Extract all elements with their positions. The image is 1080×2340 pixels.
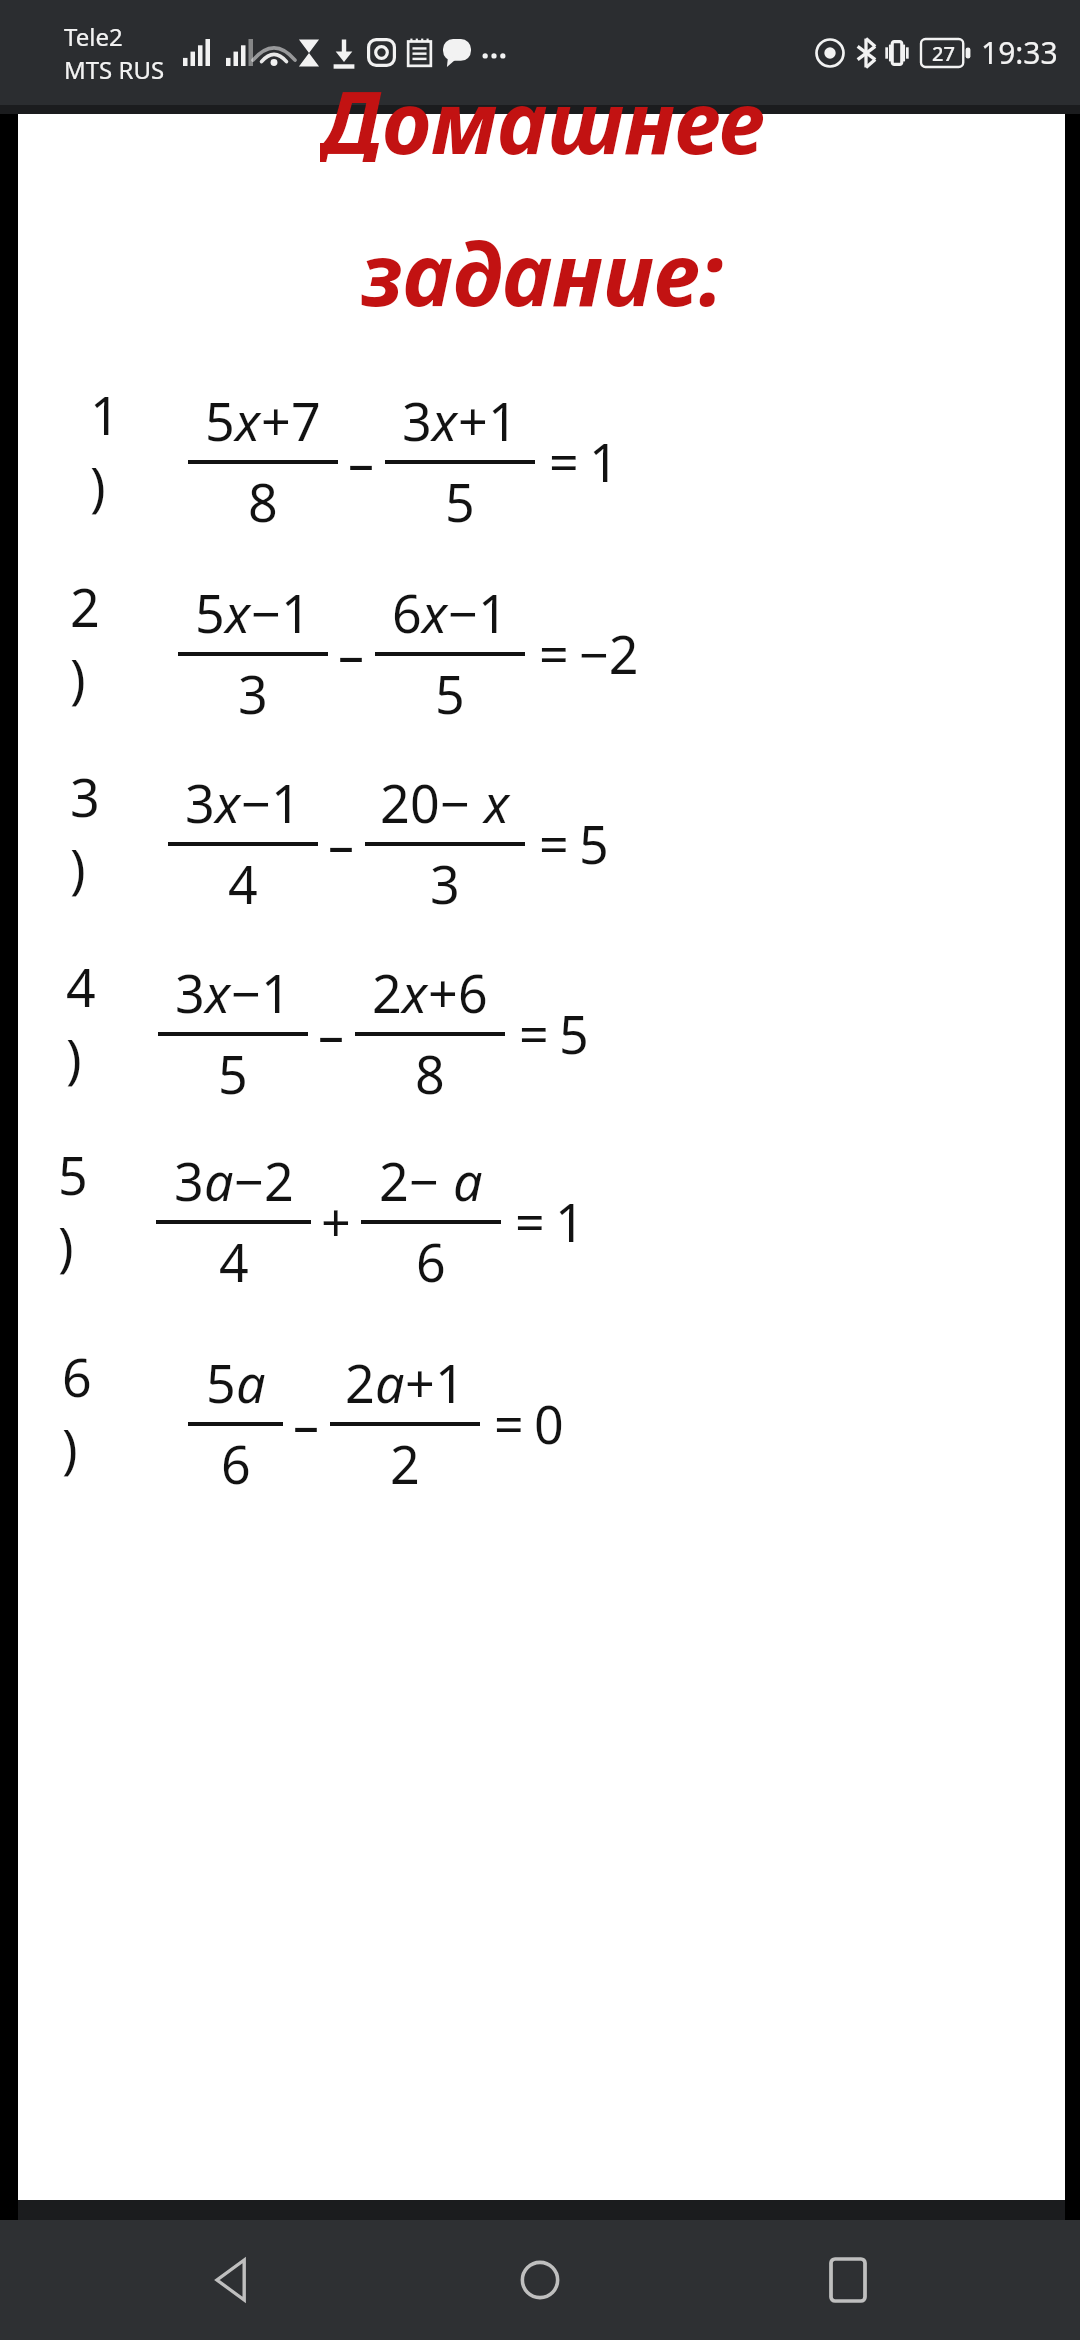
staticText: 3 [175, 957, 205, 1028]
button[interactable]: Home [465, 2220, 615, 2340]
staticText: 1 [488, 385, 518, 456]
staticText: 2 [390, 1428, 420, 1499]
staticText: x [205, 957, 231, 1028]
staticText: 2 [264, 1145, 294, 1216]
staticText: + [261, 385, 291, 456]
staticText: ) [70, 832, 86, 903]
staticText: 4 [228, 848, 258, 919]
staticText: 4 [219, 1226, 249, 1297]
staticText: 1 [261, 957, 291, 1028]
staticText: 6 [392, 577, 422, 648]
staticText: 8 [415, 1038, 445, 1109]
staticText: = [494, 1388, 524, 1459]
staticText: = [515, 1186, 545, 1257]
staticText: 3 [185, 767, 215, 838]
staticText: Tele2 [64, 20, 123, 53]
staticText: – [348, 426, 375, 497]
staticText: 8 [248, 466, 278, 537]
staticText: 2 [379, 1145, 409, 1216]
staticText: ) [62, 1412, 78, 1483]
staticText: 2 [70, 571, 100, 642]
staticText: – [293, 1388, 320, 1459]
staticText: x [215, 767, 241, 838]
staticText: 1 [281, 577, 311, 648]
staticText: 1 [435, 1347, 465, 1418]
staticText: 1 [478, 577, 508, 648]
staticText: задание: [360, 214, 724, 331]
staticText: 2 [345, 1347, 375, 1418]
staticText: − [448, 577, 478, 648]
staticText: 3 [430, 848, 460, 919]
staticText: − [251, 577, 281, 648]
staticText: 3 [238, 658, 268, 729]
staticText: 5 [435, 658, 465, 729]
staticText: − [409, 1145, 439, 1216]
staticText: = [519, 998, 549, 1069]
staticText: 4 [66, 951, 96, 1022]
staticText: 1 [589, 426, 619, 497]
staticText: 7 [291, 385, 321, 456]
staticText: a [236, 1347, 266, 1418]
staticText: ) [90, 450, 106, 521]
staticText: – [328, 808, 355, 879]
staticText: – [338, 618, 365, 689]
staticText: 3 [402, 385, 432, 456]
button[interactable]: Back [158, 2220, 308, 2340]
staticText: 2 [372, 957, 402, 1028]
staticText: 3 [174, 1145, 204, 1216]
staticText: 5 [445, 466, 475, 537]
staticText: 1 [271, 767, 301, 838]
button[interactable]: Домашнее [18, 114, 1065, 2200]
staticText: = [549, 426, 579, 497]
button[interactable]: Recents [773, 2220, 923, 2340]
staticText: Домашнее [320, 62, 764, 162]
staticText: 0 [534, 1388, 564, 1459]
staticText: a [204, 1145, 234, 1216]
staticText: 2 [380, 767, 410, 838]
staticText: 5 [58, 1139, 88, 1210]
staticText: −2 [579, 618, 639, 689]
staticText: 6 [62, 1341, 92, 1412]
staticText: ) [70, 642, 86, 713]
staticText: – [318, 998, 345, 1069]
staticText: − [231, 957, 261, 1028]
staticText: 5 [559, 998, 589, 1069]
staticText: MTS RUS [64, 53, 165, 86]
staticText: 1 [90, 379, 120, 450]
staticText: 5 [218, 1038, 248, 1109]
staticText: x [225, 577, 251, 648]
staticText: 5 [205, 385, 235, 456]
staticText [470, 767, 484, 838]
staticText: x [235, 385, 261, 456]
staticText: 1 [555, 1186, 585, 1257]
staticText: a [453, 1145, 483, 1216]
staticText: a [375, 1347, 405, 1418]
staticText: 5 [195, 577, 225, 648]
staticText: 27 [932, 40, 955, 67]
staticText: 19:33 [981, 32, 1058, 73]
staticText: ) [58, 1210, 74, 1281]
staticText: − [241, 767, 271, 838]
staticText: x [422, 577, 448, 648]
staticText: + [428, 957, 458, 1028]
staticText: 6 [416, 1226, 446, 1297]
staticText: 6 [458, 957, 488, 1028]
staticText: + [321, 1186, 351, 1257]
staticText: − [234, 1145, 264, 1216]
staticText: = [539, 808, 569, 879]
staticText: − [440, 767, 470, 838]
staticText: + [405, 1347, 435, 1418]
staticText: 5 [579, 808, 609, 879]
staticText: + [458, 385, 488, 456]
staticText: 0 [410, 767, 440, 838]
staticText: ) [66, 1022, 82, 1093]
staticText: x [402, 957, 428, 1028]
staticText: 3 [70, 761, 100, 832]
staticText: 5 [206, 1347, 236, 1418]
staticText: = [539, 618, 569, 689]
staticText: x [432, 385, 458, 456]
staticText: 6 [221, 1428, 251, 1499]
staticText: x [484, 767, 510, 838]
